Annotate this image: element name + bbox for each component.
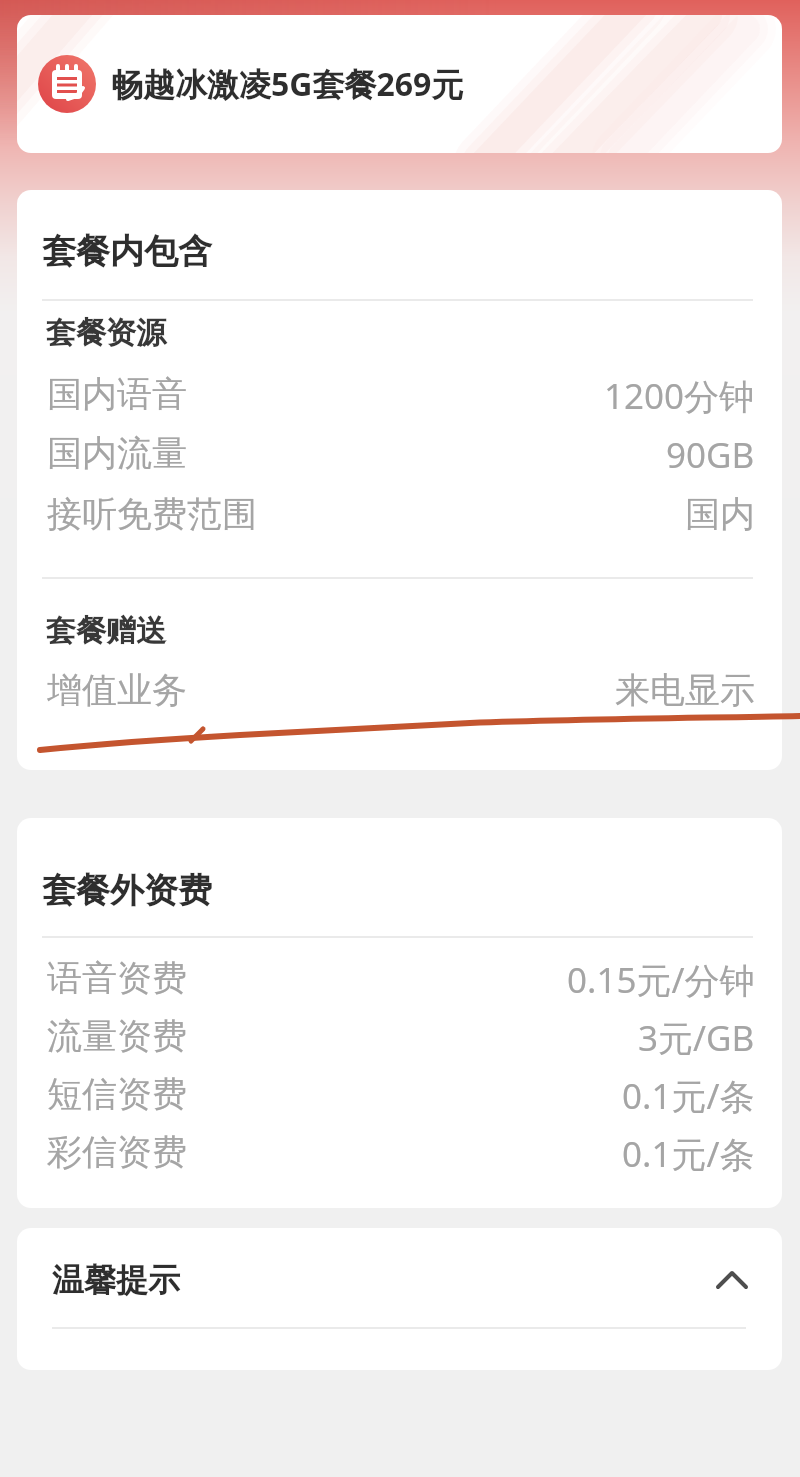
staticText: 国内语音 — [47, 372, 187, 416]
staticText: 短信资费 — [47, 1072, 187, 1116]
staticText: 套餐外资费 — [42, 869, 212, 912]
staticText: 套餐内包含 — [42, 230, 212, 273]
staticText: 增值业务 — [47, 668, 187, 712]
staticText: 90GB — [666, 431, 755, 475]
staticText: 来电显示 — [615, 668, 755, 712]
staticText: 套餐赠送 — [46, 612, 166, 650]
staticText: 1200分钟 — [604, 372, 755, 416]
staticText: 畅越冰激凌5G套餐269元 — [111, 62, 464, 106]
staticText: 3元/GB — [638, 1014, 755, 1058]
staticText: 温馨提示 — [52, 1260, 180, 1300]
staticText: 国内流量 — [47, 431, 187, 475]
staticText: 语音资费 — [47, 956, 187, 1000]
button[interactable]: 畅越冰激凌5G套餐269元 — [17, 15, 782, 153]
staticText: 0.1元/条 — [622, 1130, 755, 1174]
staticText: 流量资费 — [47, 1014, 187, 1058]
staticText: 国内 — [685, 492, 755, 536]
staticText: 0.1元/条 — [622, 1072, 755, 1116]
staticText: 套餐资源 — [46, 314, 166, 352]
button[interactable]: 温馨提示 — [52, 1258, 746, 1302]
staticText: 接听免费范围 — [47, 492, 257, 536]
staticText: 彩信资费 — [47, 1130, 187, 1174]
staticText: 0.15元/分钟 — [567, 956, 755, 1000]
